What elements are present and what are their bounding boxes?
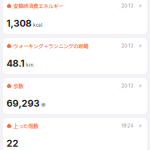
button[interactable]: 安静時消費エネルギー (3, 0, 147, 34)
staticText: 歩数 (13, 82, 23, 90)
staticText: 22 (6, 138, 18, 149)
button[interactable]: 上った階数 (3, 118, 147, 150)
staticText: km (26, 61, 33, 68)
staticText: 20:13 (121, 3, 133, 9)
staticText: 上った階数 (13, 122, 38, 130)
staticText: 48.1 (6, 58, 24, 69)
staticText: 1,308 (6, 18, 31, 29)
button[interactable]: 歩数 (3, 78, 147, 114)
button[interactable]: ウォーキング＋ランニングの距離 (3, 38, 147, 74)
staticText: 安静時消費エネルギー (13, 2, 63, 10)
staticText: 20:13 (121, 83, 133, 89)
staticText: kcal (33, 21, 42, 28)
staticText: 69,293 (6, 98, 39, 109)
staticText: ウォーキング＋ランニングの距離 (13, 42, 88, 50)
staticText: 20:13 (121, 43, 133, 49)
staticText: 歩 (41, 101, 46, 108)
staticText: 19:24 (121, 123, 133, 129)
